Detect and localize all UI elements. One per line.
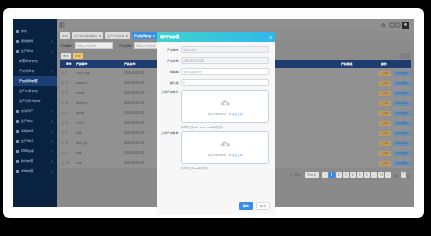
button[interactable]: 生产工单管理 — [13, 86, 57, 96]
button[interactable]: 生产机器基础数据 — [72, 32, 103, 39]
button[interactable]: 产品信息配置 — [13, 76, 57, 86]
button[interactable]: 5 — [357, 172, 363, 178]
button[interactable]: 查询 — [61, 53, 71, 59]
button[interactable]: 上传包 — [379, 151, 391, 156]
button[interactable]: 请输入规格型号 — [181, 68, 269, 75]
button[interactable]: › — [385, 172, 391, 178]
button[interactable]: 产品信息配置 — [393, 141, 411, 146]
button[interactable]: 1 — [401, 172, 406, 178]
button[interactable]: 1 — [329, 172, 335, 178]
button[interactable]: Account — [402, 22, 409, 29]
button[interactable]: 10 — [60, 158, 411, 168]
button[interactable]: 请输入产品编号 — [75, 42, 113, 49]
staticText: 点击上传 — [232, 153, 243, 156]
button[interactable]: 上传包 — [379, 111, 391, 116]
staticText: 请输入编号 — [183, 48, 197, 51]
button[interactable]: 上传包 — [379, 91, 391, 96]
button[interactable]: 自动化产品配 — [13, 106, 57, 116]
button[interactable]: Tool — [390, 23, 394, 27]
staticText: 请输入规格型号 — [183, 70, 202, 73]
staticText: 生产产品信息 — [107, 34, 125, 38]
button[interactable]: 生产任务分配器 — [13, 96, 57, 106]
button[interactable]: … — [371, 172, 377, 178]
button[interactable]: Menu — [60, 23, 64, 27]
button[interactable]: 请输入产品名称 — [134, 42, 172, 49]
button[interactable]: 产品信息配置 — [393, 81, 411, 86]
staticText: 四级 — [76, 131, 124, 135]
staticText: 将文件拖到此处，或 — [208, 153, 232, 156]
button[interactable]: 新增 — [73, 53, 83, 59]
button[interactable]: 6 — [364, 172, 370, 178]
staticText: 10 — [66, 161, 76, 165]
staticText: 上传包 — [381, 142, 389, 145]
staticText: 仅支持上传 pdf格式文件。 — [181, 166, 211, 169]
staticText: 操作 — [381, 62, 411, 66]
button[interactable]: 上传包 — [379, 131, 391, 136]
button[interactable]: 取消 — [256, 202, 270, 210]
button[interactable]: 上传包 — [379, 101, 391, 106]
button[interactable]: Search — [381, 23, 386, 28]
button[interactable]: 8 — [60, 138, 411, 148]
button[interactable]: 生产电工管理 — [13, 116, 57, 126]
button[interactable]: 产品信息配置 — [132, 32, 157, 39]
button[interactable]: Tool — [396, 23, 400, 27]
staticText: 8 — [66, 141, 76, 145]
button[interactable]: 产品信息配置 — [393, 111, 411, 116]
button[interactable]: 上传包 — [379, 141, 391, 146]
button[interactable]: 4 — [350, 172, 356, 178]
button[interactable]: OEM设备管理 — [13, 146, 57, 156]
button[interactable]: 运维电话管理 — [13, 126, 57, 136]
staticText: 产品名称 — [124, 62, 194, 66]
button[interactable]: 首页 — [13, 26, 57, 36]
staticText: 2400-40-010-00 — [124, 101, 194, 105]
staticText: 2400-40-010-00 — [124, 81, 194, 85]
staticText: 产品名称 — [167, 59, 179, 63]
button[interactable]: 上传包 — [379, 81, 391, 86]
staticText: 2400-40-010-00 — [124, 91, 194, 95]
button[interactable]: 软件配置管理 — [13, 156, 57, 166]
button[interactable]: 上传包 — [379, 161, 391, 166]
button[interactable]: 生产机器管理 — [13, 46, 57, 56]
button[interactable]: 2 — [60, 78, 411, 88]
button[interactable]: 14 — [378, 172, 384, 178]
button[interactable]: 请输入编号 — [181, 46, 269, 53]
button[interactable]: 产品信息配置 — [393, 151, 411, 156]
button[interactable]: 产品信息配置 — [393, 91, 411, 96]
button[interactable]: 2 — [336, 172, 342, 178]
button[interactable]: 配置机器管理 — [13, 56, 57, 66]
button[interactable]: 1 — [60, 68, 411, 78]
button[interactable]: 产品信息配置 — [393, 131, 411, 136]
button[interactable]: 7 — [60, 128, 411, 138]
button[interactable]: ‹ — [322, 172, 328, 178]
button[interactable]: 2400-40-010-000 — [181, 57, 269, 64]
button[interactable]: 首页 — [60, 32, 70, 39]
button[interactable]: 0 — [181, 79, 269, 86]
button[interactable]: 产品信息配置 — [393, 71, 411, 76]
button[interactable]: 系统配置上传 — [13, 166, 57, 176]
button[interactable]: Close — [268, 35, 273, 40]
button[interactable]: 10条/页 — [305, 172, 319, 178]
button[interactable]: 9 — [60, 148, 411, 158]
staticText: 2400-40-010-00 — [124, 141, 194, 145]
button[interactable]: 产品信息管理 — [13, 66, 57, 76]
staticText: 4 — [66, 101, 76, 105]
button[interactable]: 确定 — [239, 202, 253, 210]
button[interactable]: 上传包 — [379, 71, 391, 76]
button[interactable]: 基础数据管理 — [13, 36, 57, 46]
button[interactable]: Refresh — [399, 54, 403, 58]
button[interactable]: 4 — [60, 98, 411, 108]
button[interactable]: 3 — [343, 172, 349, 178]
button[interactable]: Upload file — [181, 90, 269, 123]
button[interactable]: 产品信息配置 — [393, 161, 411, 166]
button[interactable]: Upload file — [181, 131, 269, 164]
button[interactable]: 产品信息配置 — [393, 101, 411, 106]
button[interactable]: 3 — [60, 88, 411, 98]
button[interactable]: 5 — [60, 108, 411, 118]
staticText: 产品名称: — [119, 44, 132, 48]
button[interactable]: 产品信息配置 — [393, 121, 411, 126]
button[interactable]: Columns — [405, 54, 409, 58]
button[interactable]: 6 — [60, 118, 411, 128]
button[interactable]: 上传包 — [379, 121, 391, 126]
button[interactable]: 生产产品信息 — [105, 32, 130, 39]
button[interactable]: 生产统计报表 — [13, 136, 57, 146]
